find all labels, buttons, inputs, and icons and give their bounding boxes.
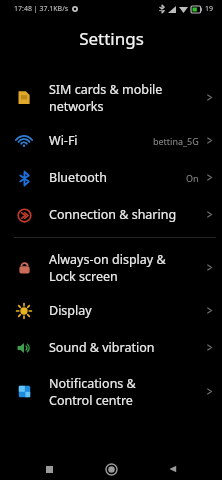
staticText: SIM cards & mobile networks [49, 81, 205, 114]
button[interactable]: SIM cards & mobile networks [0, 72, 222, 122]
button[interactable]: Connection & sharing [0, 196, 222, 233]
staticText: Bluetooth [49, 169, 186, 186]
button[interactable]: Wi-Fi [0, 122, 222, 159]
button[interactable]: Home [98, 458, 124, 480]
button[interactable]: Notifications & Control centre [0, 366, 222, 416]
staticText: On [186, 172, 199, 184]
staticText: Settings [79, 27, 144, 50]
staticText: 17:48 | 37.1KB/s [14, 4, 69, 14]
staticText: 19 [205, 4, 214, 14]
button[interactable]: Display [0, 292, 222, 329]
button[interactable]: Sound & vibration [0, 329, 222, 366]
staticText: bettina_5G [153, 135, 199, 147]
staticText: Connection & sharing [49, 206, 205, 223]
button[interactable]: Bluetooth [0, 159, 222, 196]
button[interactable]: Recent apps [36, 458, 62, 480]
button[interactable]: Always-on display & Lock screen [0, 242, 222, 292]
staticText: Sound & vibration [49, 339, 205, 356]
staticText: Display [49, 302, 205, 319]
staticText: Notifications & Control centre [49, 375, 205, 408]
staticText: Wi-Fi [49, 132, 153, 149]
button[interactable]: Back [160, 458, 186, 480]
staticText: Always-on display & Lock screen [49, 251, 205, 284]
